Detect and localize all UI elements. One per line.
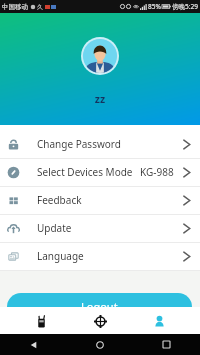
button[interactable]: Logout [7,293,192,321]
button[interactable]: Language [0,243,200,270]
staticText: zz [0,92,200,106]
button[interactable]: Change Password [0,131,200,158]
staticText: KG-988 [140,165,174,179]
button[interactable]: Radio [21,308,61,335]
staticText: Select Devices Mode [37,165,133,179]
button[interactable]: Select Devices Mode [0,159,200,186]
staticText: 傍晚5:29 [172,2,198,11]
staticText: Change Password [37,137,121,151]
staticText: Update [37,221,72,235]
staticText: 85% [148,2,161,11]
button[interactable]: Target [80,308,120,335]
staticText: 中国移动 [2,3,28,11]
staticText: Language [37,249,84,263]
button[interactable]: Profile [139,308,179,335]
staticText: Feedback [37,193,82,207]
staticText: 久 [37,3,43,11]
staticText: Logout [81,299,118,314]
button[interactable]: Update [0,215,200,242]
button[interactable]: Feedback [0,187,200,214]
